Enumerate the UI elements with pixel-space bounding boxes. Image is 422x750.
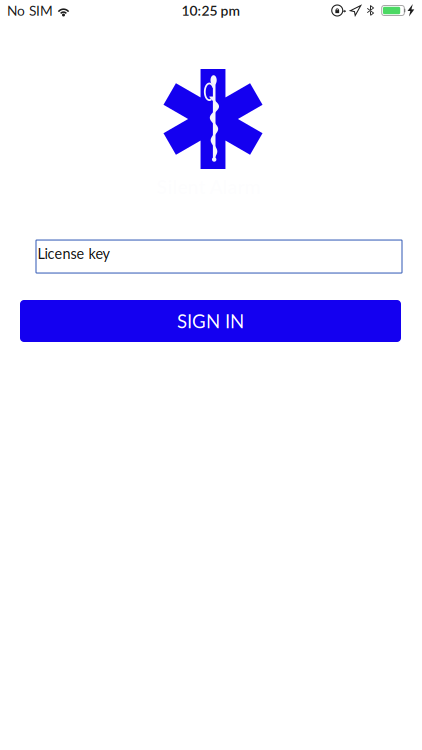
staticText: 10:25 pm <box>181 2 240 19</box>
staticText: License key <box>37 245 109 262</box>
staticText: SIGN IN <box>177 310 244 332</box>
staticText: No SIM <box>7 2 53 19</box>
button[interactable]: SIGN IN <box>20 300 401 342</box>
